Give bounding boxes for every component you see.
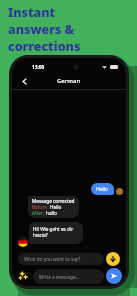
staticText: hallo — [46, 210, 57, 216]
staticText: Hi! Wie geht es dir heute? — [33, 226, 80, 238]
staticText: Write a message... — [39, 274, 80, 280]
staticText: Hello — [50, 204, 62, 210]
staticText: What do you want to say? — [24, 256, 81, 262]
staticText: Message corrected — [32, 198, 75, 204]
button[interactable]: Scroll to bottom — [106, 252, 120, 266]
staticText: Hello — [96, 186, 109, 193]
staticText: German — [57, 77, 81, 85]
staticText: answers & — [8, 21, 75, 38]
staticText: Before: — [32, 204, 50, 210]
staticText: 13:00 — [32, 64, 45, 71]
staticText: After: — [32, 210, 46, 216]
staticText: corrections — [8, 38, 81, 55]
button[interactable]: Send — [106, 268, 122, 284]
staticText: Instant — [8, 4, 56, 21]
button[interactable]: Back — [17, 74, 31, 88]
button[interactable]: AI assist — [17, 270, 29, 282]
button[interactable]: Write a message... — [33, 269, 104, 284]
button[interactable]: What do you want to say? — [18, 253, 104, 265]
